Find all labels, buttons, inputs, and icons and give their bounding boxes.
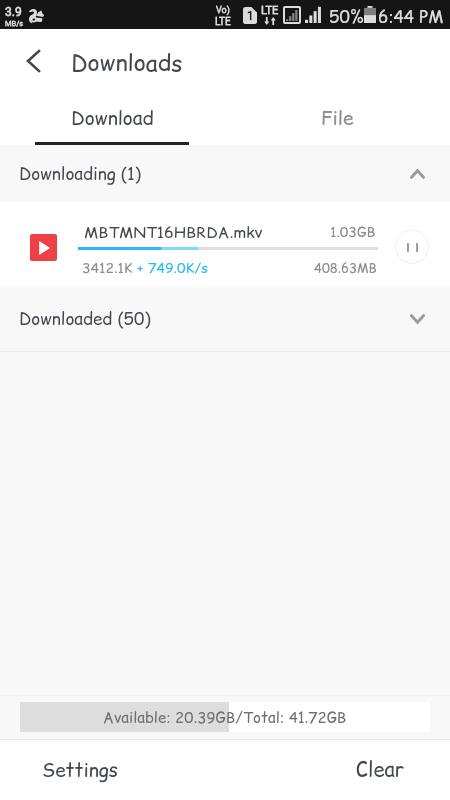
staticText: Settings bbox=[42, 757, 119, 784]
staticText: 50% bbox=[329, 5, 364, 29]
staticText: 3.9 bbox=[5, 5, 22, 19]
staticText: LTE bbox=[261, 4, 279, 17]
staticText: Downloading (1) bbox=[19, 162, 141, 186]
staticText: LTE bbox=[215, 16, 231, 28]
button[interactable]: Settings bbox=[20, 740, 140, 800]
staticText: 3412.1K bbox=[82, 258, 137, 278]
staticText: 1 bbox=[247, 9, 254, 23]
staticText: 408.63MB bbox=[314, 259, 377, 277]
button[interactable]: Downloaded (50) bbox=[0, 287, 450, 351]
staticText: Downloaded (50) bbox=[19, 307, 151, 331]
staticText: 1.03GB bbox=[330, 222, 376, 242]
button[interactable]: MBTMNT16HBRDA.mkv bbox=[0, 202, 450, 287]
staticText: Downloads bbox=[71, 47, 183, 79]
button[interactable]: Pause bbox=[395, 230, 429, 264]
staticText: Available: 20.39GB/Total: 41.72GB bbox=[103, 707, 347, 728]
staticText: MB/s bbox=[5, 19, 24, 28]
staticText: Download bbox=[71, 105, 154, 132]
staticText: Vo) bbox=[216, 5, 230, 16]
staticText: + 749.0K/s bbox=[137, 258, 209, 278]
button[interactable]: File bbox=[225, 92, 450, 145]
staticText: MBTMNT16HBRDA.mkv bbox=[84, 221, 263, 243]
button[interactable]: Clear bbox=[320, 740, 440, 800]
staticText: Clear bbox=[356, 756, 405, 784]
button[interactable]: Back bbox=[10, 37, 58, 85]
button[interactable]: Download bbox=[0, 92, 225, 145]
button[interactable]: Downloading (1) bbox=[0, 145, 450, 202]
staticText: File bbox=[321, 105, 354, 132]
staticText: 6:44 PM bbox=[378, 5, 444, 29]
